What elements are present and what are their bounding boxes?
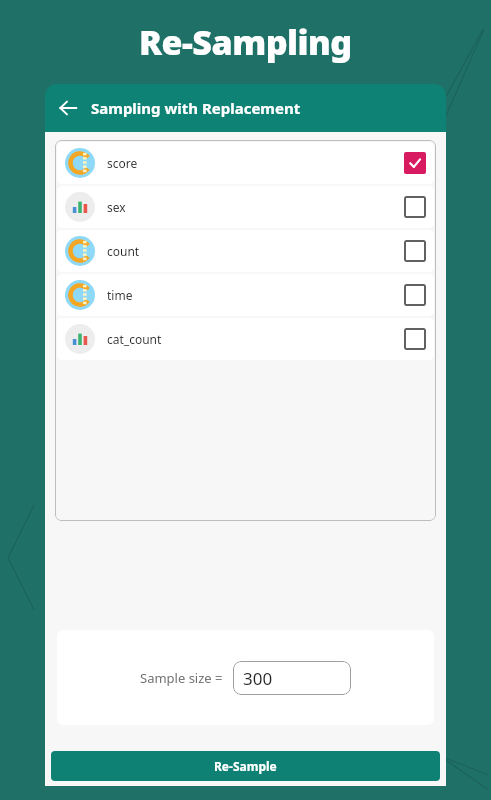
button[interactable]: sex (57, 186, 434, 228)
button[interactable]: Selected (404, 152, 426, 174)
button[interactable]: Not selected (404, 328, 426, 350)
staticText: time (107, 287, 133, 303)
staticText: Sample size = (140, 669, 223, 687)
staticText: count (107, 243, 140, 259)
staticText: cat_count (107, 331, 162, 347)
staticText: sex (107, 199, 126, 215)
button[interactable]: Back (45, 85, 91, 131)
staticText: Re-Sample (214, 758, 277, 774)
button[interactable]: score (57, 142, 434, 184)
staticText: 300 (243, 667, 273, 690)
button[interactable]: Re-Sample (51, 751, 440, 781)
button[interactable]: time (57, 274, 434, 316)
button[interactable]: Not selected (404, 240, 426, 262)
button[interactable]: count (57, 230, 434, 272)
button[interactable]: 300 (233, 661, 351, 695)
staticText: Sampling with Replacement (91, 98, 301, 118)
staticText: Re-Sampling (139, 19, 352, 65)
button[interactable]: Not selected (404, 196, 426, 218)
button[interactable]: Not selected (404, 284, 426, 306)
staticText: score (107, 155, 138, 171)
button[interactable]: cat_count (57, 318, 434, 360)
